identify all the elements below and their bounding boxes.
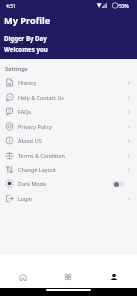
button[interactable]: Dark Mode — [0, 176, 137, 191]
button[interactable]: FAQs — [0, 104, 137, 119]
staticText: Privacy Policy — [18, 123, 53, 130]
staticText: Change Layout — [18, 166, 56, 173]
button[interactable]: Toggle dark mode — [112, 181, 125, 187]
button[interactable]: Home — [0, 255, 45, 288]
button[interactable]: Dashboard — [45, 255, 91, 288]
staticText: Settings — [5, 65, 28, 73]
button[interactable]: Login — [0, 191, 137, 206]
button[interactable]: Change Layout — [0, 162, 137, 177]
staticText: FAQs — [18, 108, 31, 115]
button[interactable]: History — [0, 75, 137, 90]
staticText: Terms & Condition — [18, 152, 65, 159]
staticText: My Profile — [4, 14, 51, 27]
staticText: Help & Contact Us — [18, 94, 64, 101]
button[interactable]: Terms & Condition — [0, 148, 137, 163]
button[interactable]: Help & Contact Us — [0, 90, 137, 105]
staticText: Dark Mode — [18, 180, 46, 187]
staticText: History — [18, 79, 37, 86]
staticText: 53% — [119, 3, 129, 10]
staticText: Welcomes you — [4, 45, 48, 53]
staticText: About US — [18, 137, 42, 144]
staticText: 4:51 — [6, 3, 16, 10]
button[interactable]: About US — [0, 133, 137, 148]
staticText: Login — [18, 195, 33, 202]
button[interactable]: Privacy Policy — [0, 119, 137, 134]
staticText: Digger By Day — [4, 34, 47, 42]
button[interactable]: Profile — [91, 255, 137, 288]
